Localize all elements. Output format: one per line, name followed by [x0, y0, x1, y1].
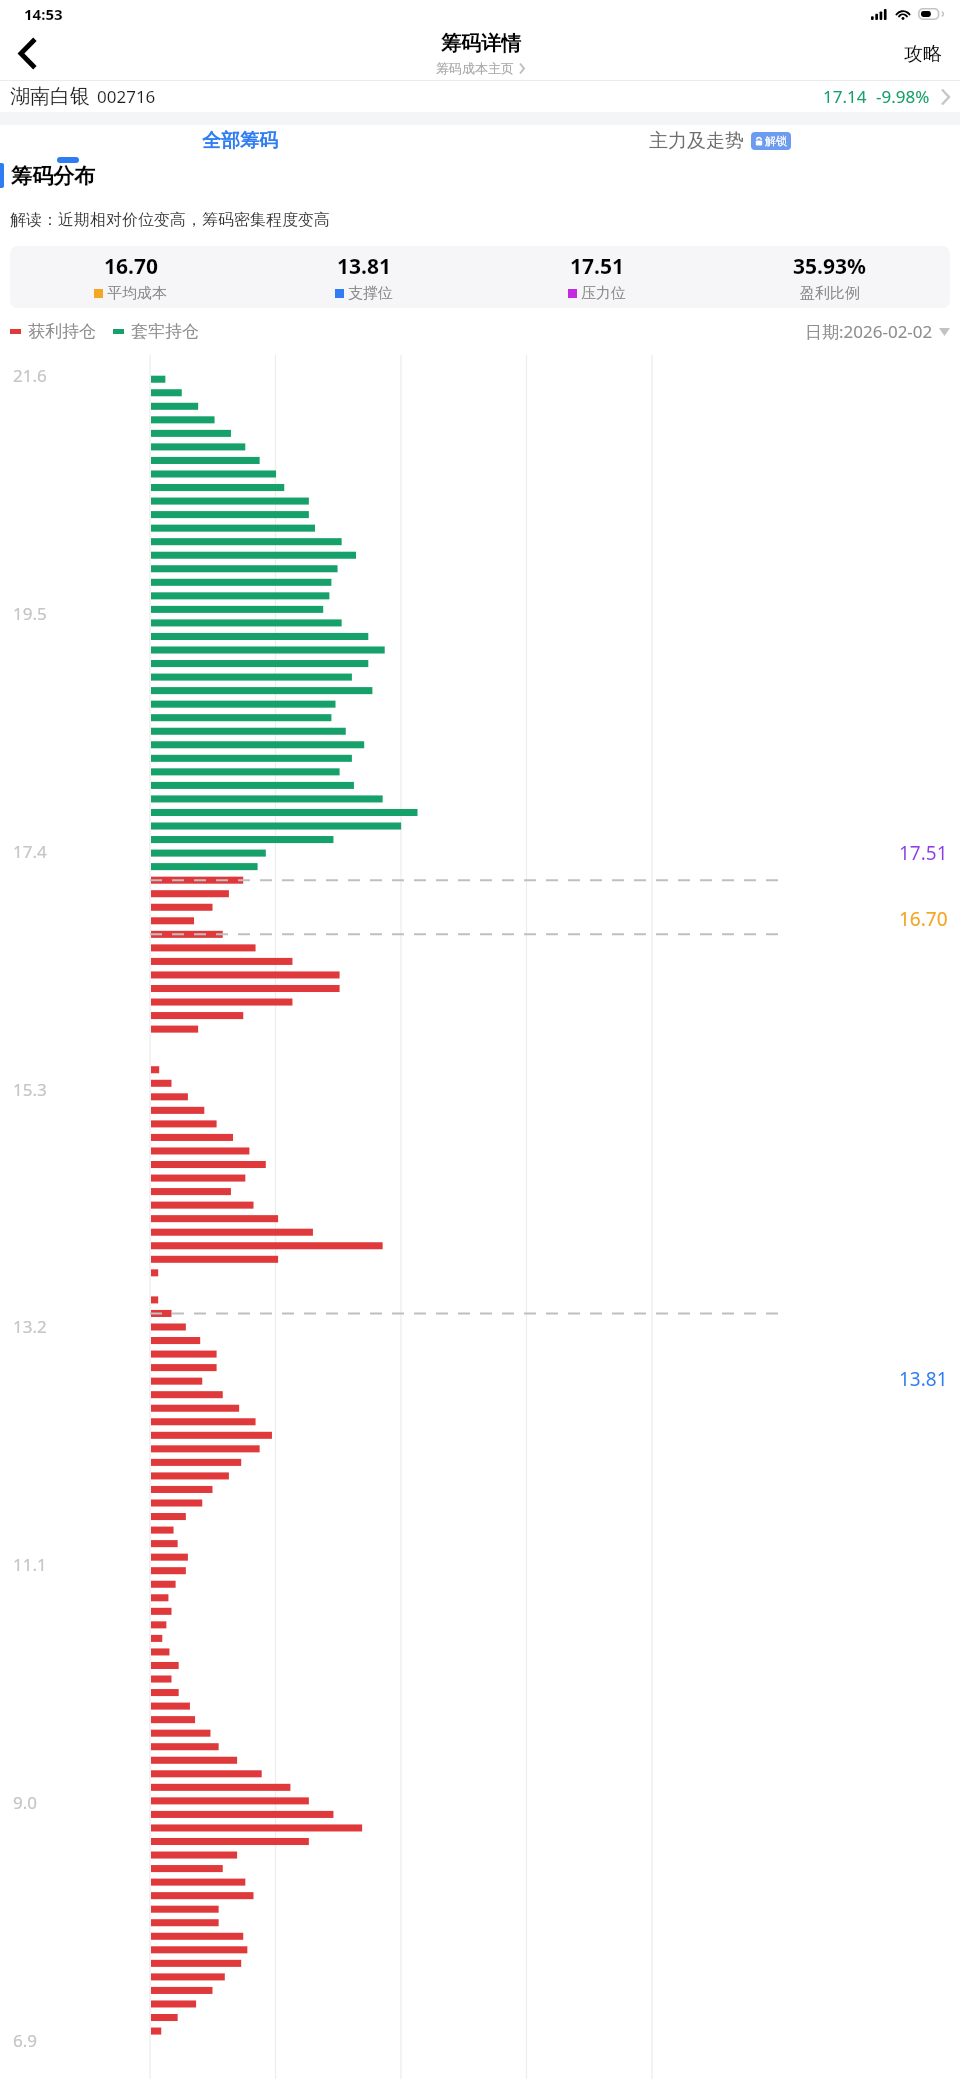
- staticText: 13.81: [899, 1366, 948, 1392]
- staticText: 13.81: [337, 252, 391, 281]
- button[interactable]: 主力及走势: [480, 125, 960, 157]
- staticText: 盈利比例: [800, 284, 860, 303]
- staticText: 日期:2026-02-02: [805, 320, 933, 343]
- button[interactable]: 16.70: [10, 246, 950, 308]
- staticText: 湖南白银: [10, 84, 90, 109]
- staticText: 套牢持仓: [131, 321, 199, 342]
- button[interactable]: 攻略: [904, 42, 942, 66]
- staticText: 压力位: [581, 284, 626, 303]
- staticText: 9.0: [13, 1791, 38, 1814]
- staticText: 6.9: [13, 2029, 38, 2052]
- staticText: 17.4: [13, 840, 47, 863]
- staticText: 筹码分布: [11, 163, 95, 189]
- staticText: 16.70: [899, 906, 948, 932]
- staticText: 主力及走势: [649, 129, 744, 153]
- button[interactable]: 湖南白银: [0, 81, 960, 112]
- staticText: 002716: [97, 85, 156, 108]
- button[interactable]: Back: [0, 27, 54, 80]
- staticText: 11.1: [13, 1553, 47, 1576]
- staticText: 19.5: [13, 602, 47, 625]
- staticText: 解读：近期相对价位变高，筹码密集程度变高: [10, 210, 330, 230]
- staticText: -9.98%: [876, 85, 930, 108]
- staticText: 15.3: [13, 1078, 47, 1101]
- staticText: 35.93%: [793, 252, 866, 281]
- staticText: 攻略: [904, 42, 942, 66]
- staticText: 获利持仓: [28, 321, 96, 342]
- button[interactable]: 筹码成本主页: [436, 60, 525, 76]
- staticText: 21.6: [13, 364, 47, 387]
- staticText: 17.14: [823, 85, 867, 108]
- staticText: 17.51: [570, 252, 624, 281]
- button[interactable]: 全部筹码: [0, 125, 480, 157]
- staticText: 解锁: [765, 134, 787, 148]
- staticText: 支撑位: [348, 284, 393, 303]
- staticText: 14:53: [24, 4, 63, 24]
- staticText: 17.51: [899, 840, 948, 866]
- staticText: 16.70: [104, 252, 158, 281]
- staticText: 13.2: [13, 1315, 47, 1338]
- staticText: 筹码成本主页: [436, 60, 514, 76]
- staticText: 平均成本: [107, 284, 167, 303]
- staticText: 筹码详情: [441, 31, 521, 56]
- button[interactable]: 日期:2026-02-02: [805, 320, 950, 343]
- staticText: 全部筹码: [202, 129, 278, 153]
